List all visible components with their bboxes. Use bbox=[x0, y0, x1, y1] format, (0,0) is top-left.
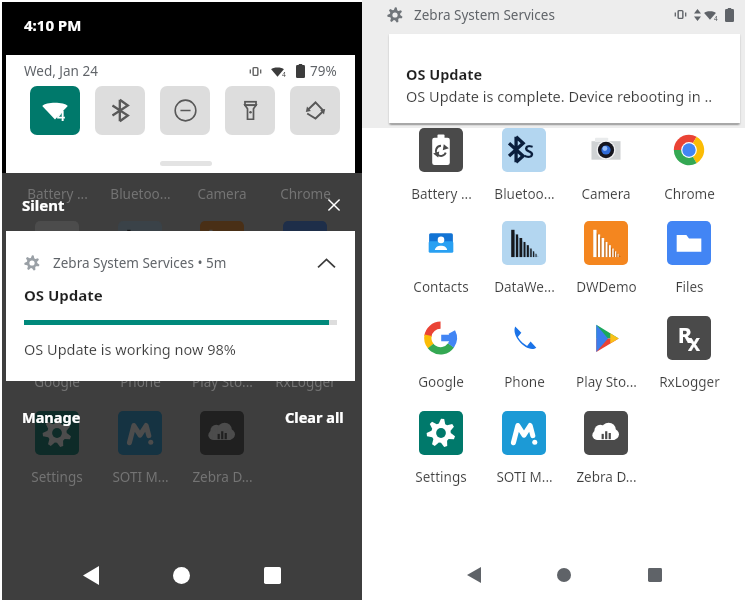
staticText: OS Update bbox=[24, 285, 103, 305]
button[interactable]: Phone bbox=[483, 310, 565, 391]
staticText: Camera bbox=[197, 185, 247, 203]
staticText: DataWe... bbox=[494, 278, 555, 296]
button[interactable]: Battery ... bbox=[400, 122, 482, 203]
button[interactable]: Recents bbox=[248, 551, 296, 599]
staticText: Wed, Jan 24 bbox=[24, 62, 98, 80]
button[interactable]: Clear all bbox=[285, 407, 344, 427]
staticText: Bluetoo... bbox=[110, 185, 171, 203]
button[interactable]: Settings bbox=[400, 405, 482, 486]
staticText: R bbox=[294, 321, 308, 350]
button[interactable]: Flashlight bbox=[225, 86, 275, 135]
staticText: Phone bbox=[504, 373, 545, 391]
button[interactable]: Manage bbox=[22, 407, 81, 427]
button[interactable]: Do not disturb bbox=[160, 86, 210, 135]
staticText: 79% bbox=[310, 62, 337, 80]
staticText: OS Update is complete. Device rebooting … bbox=[406, 86, 713, 106]
staticText: 4 bbox=[714, 14, 718, 23]
staticText: Google bbox=[34, 373, 80, 391]
staticText: Manage bbox=[22, 407, 81, 427]
button[interactable]: Collapse bbox=[315, 252, 337, 274]
staticText: Contacts bbox=[413, 278, 469, 296]
button[interactable]: Back bbox=[450, 551, 498, 599]
staticText: Contacts bbox=[29, 278, 85, 296]
staticText: Play Sto... bbox=[576, 373, 637, 391]
button[interactable]: OS Update bbox=[389, 34, 740, 123]
button[interactable]: Recents bbox=[631, 551, 679, 599]
staticText: DWDemo bbox=[576, 278, 637, 296]
button[interactable]: Wi-Fi bbox=[30, 86, 80, 135]
staticText: Zebra D... bbox=[576, 468, 637, 486]
button[interactable]: DataWe... bbox=[483, 215, 565, 296]
button[interactable]: Camera bbox=[565, 122, 647, 203]
staticText: RxLogger bbox=[275, 373, 336, 391]
staticText: Battery ... bbox=[27, 185, 88, 203]
button[interactable]: DWDemo bbox=[565, 215, 647, 296]
staticText: OS Update is working now 98% bbox=[24, 339, 236, 359]
staticText: 4 bbox=[282, 70, 286, 79]
staticText: Zebra System Services • 5m bbox=[53, 254, 227, 272]
button[interactable]: Bluetooth bbox=[95, 86, 145, 135]
button[interactable]: Google bbox=[400, 310, 482, 391]
staticText: Google bbox=[418, 373, 464, 391]
staticText: Phone bbox=[120, 373, 161, 391]
staticText: Settings bbox=[415, 468, 467, 486]
staticText: Settings bbox=[31, 468, 83, 486]
staticText: 4:10 PM bbox=[24, 15, 82, 35]
button[interactable]: R bbox=[648, 310, 730, 391]
staticText: Bluetoo... bbox=[494, 185, 555, 203]
button[interactable]: Contacts bbox=[400, 215, 482, 296]
button[interactable]: Zebra System Services • 5m bbox=[6, 231, 355, 381]
button[interactable]: S bbox=[483, 122, 565, 203]
staticText: Zebra System Services bbox=[414, 6, 555, 24]
button[interactable]: SOTI M... bbox=[483, 405, 565, 486]
staticText: Chrome bbox=[664, 185, 715, 203]
staticText: X bbox=[688, 332, 701, 357]
button[interactable]: Auto-rotate bbox=[290, 86, 340, 135]
staticText: Play Sto... bbox=[192, 373, 253, 391]
staticText: SOTI M... bbox=[112, 468, 169, 486]
staticText: Zebra D... bbox=[192, 468, 253, 486]
staticText: Camera bbox=[581, 185, 631, 203]
staticText: OS Update bbox=[406, 64, 483, 84]
staticText: 4 bbox=[57, 106, 66, 125]
button[interactable]: Play Sto... bbox=[565, 310, 647, 391]
staticText: Silent bbox=[22, 195, 65, 215]
staticText: Files bbox=[675, 278, 704, 296]
button[interactable]: Zebra D... bbox=[565, 405, 647, 486]
button[interactable]: Chrome bbox=[648, 122, 730, 203]
staticText: R bbox=[678, 321, 692, 350]
button[interactable]: Home bbox=[540, 551, 588, 599]
staticText: SOTI M... bbox=[496, 468, 553, 486]
staticText: S bbox=[524, 139, 534, 164]
button[interactable]: Back bbox=[67, 551, 115, 599]
staticText: Battery ... bbox=[411, 185, 472, 203]
button[interactable]: Files bbox=[648, 215, 730, 296]
staticText: Chrome bbox=[280, 185, 331, 203]
button[interactable]: Close notifications bbox=[322, 193, 346, 217]
staticText: Clear all bbox=[285, 407, 344, 427]
button[interactable]: Home bbox=[157, 551, 205, 599]
staticText: RxLogger bbox=[659, 373, 720, 391]
